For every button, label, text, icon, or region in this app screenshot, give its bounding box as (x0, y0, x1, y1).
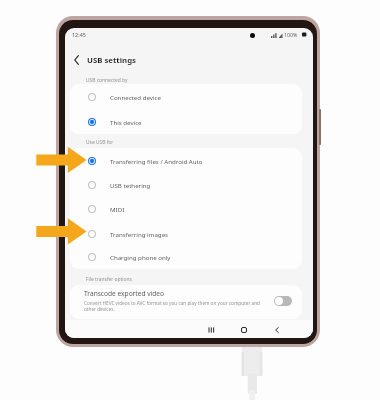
staticText: Connected device (110, 93, 161, 101)
button[interactable]: Transcode exported video (70, 285, 302, 319)
button[interactable]: Power button (319, 109, 321, 145)
staticText: USB connected by (86, 77, 128, 84)
button[interactable]: Connected device (70, 84, 302, 109)
button[interactable]: USB tethering (70, 172, 302, 197)
staticText: 100% (284, 31, 298, 38)
button[interactable]: Transferring images (70, 221, 302, 246)
button[interactable]: Back (269, 322, 285, 338)
staticText: MIDI (110, 205, 125, 213)
staticText: Transferring images (110, 230, 169, 238)
staticText: Transcode exported video (84, 289, 165, 298)
staticText: This device (110, 118, 142, 126)
staticText: Charging phone only (110, 253, 171, 261)
staticText: Convert HEVC videos to AVC format so you… (84, 300, 266, 312)
button[interactable]: Home (236, 322, 252, 338)
button[interactable]: This device (70, 109, 302, 134)
button[interactable]: Recents (203, 322, 219, 338)
button[interactable]: Transferring files / Android Auto (70, 148, 302, 173)
staticText: USB tethering (110, 181, 151, 189)
button[interactable]: Back (68, 52, 84, 68)
button[interactable]: Charging phone only (70, 244, 302, 269)
staticText: USB settings (87, 55, 136, 66)
button[interactable]: MIDI (70, 196, 302, 221)
staticText: 12:45 (72, 31, 86, 38)
staticText: Transferring files / Android Auto (110, 157, 203, 165)
staticText: Use USB for (86, 139, 114, 146)
staticText: File transfer options (86, 276, 132, 283)
